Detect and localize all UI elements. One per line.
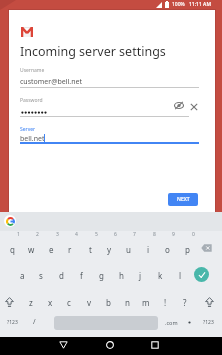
button[interactable] <box>59 341 68 349</box>
button[interactable]: ?123 <box>198 314 218 330</box>
staticText: a <box>20 270 25 281</box>
staticText: f <box>80 270 83 281</box>
staticText: t <box>89 244 92 255</box>
staticText: s <box>39 270 43 281</box>
staticText: d <box>59 270 64 281</box>
button[interactable] <box>201 244 212 252</box>
button[interactable] <box>190 103 198 111</box>
button[interactable]: a <box>13 268 31 282</box>
button[interactable]: i <box>139 242 157 256</box>
staticText: 7 <box>133 231 136 238</box>
staticText: Server <box>20 126 36 133</box>
button[interactable]: / <box>26 314 42 330</box>
button[interactable]: l <box>171 268 189 282</box>
button[interactable]: .com <box>162 314 180 330</box>
staticText: Password <box>20 97 43 104</box>
staticText: z <box>29 297 33 308</box>
staticText: ? <box>183 297 187 308</box>
staticText: p <box>185 244 190 255</box>
button[interactable] <box>20 94 170 118</box>
staticText: c <box>67 297 71 308</box>
staticText: m <box>142 297 150 308</box>
staticText: .com <box>165 319 178 326</box>
button[interactable]: x <box>41 295 59 309</box>
button[interactable] <box>5 297 14 307</box>
staticText: 8 <box>153 231 156 238</box>
staticText: q <box>10 244 15 255</box>
staticText: ?123 <box>7 319 18 326</box>
staticText: h <box>119 270 124 281</box>
staticText: 5 <box>95 231 98 238</box>
staticText: e <box>49 244 54 255</box>
button[interactable] <box>194 267 209 282</box>
button[interactable]: y <box>100 242 118 256</box>
staticText: Username <box>20 67 45 74</box>
staticText: Incoming server settings <box>20 43 166 60</box>
button[interactable]: n <box>118 295 136 309</box>
staticText: 0 <box>192 231 195 238</box>
button[interactable]: v <box>80 295 98 309</box>
button[interactable]: o <box>158 242 176 256</box>
button[interactable]: e <box>42 242 60 256</box>
button[interactable]: k <box>151 268 169 282</box>
staticText: ! <box>164 297 167 308</box>
staticText: j <box>139 270 142 281</box>
staticText: k <box>158 270 163 281</box>
button[interactable]: ? <box>176 295 194 309</box>
button[interactable]: ?123 <box>2 314 22 330</box>
staticText: 100% <box>172 1 185 8</box>
button[interactable] <box>4 215 16 227</box>
staticText: bell.net <box>20 134 45 144</box>
staticText: 1 <box>17 231 20 238</box>
staticText: x <box>48 297 53 308</box>
button[interactable] <box>20 64 199 88</box>
staticText: n <box>125 297 130 308</box>
button[interactable]: u <box>119 242 137 256</box>
staticText: l <box>179 270 182 281</box>
button[interactable]: w <box>22 242 40 256</box>
button[interactable] <box>106 341 114 349</box>
staticText: y <box>107 244 112 255</box>
staticText: b <box>106 297 111 308</box>
staticText: / <box>33 317 36 327</box>
button[interactable] <box>20 123 199 145</box>
staticText: 6 <box>114 231 117 238</box>
staticText: customer@bell.net <box>20 77 83 87</box>
button[interactable]: NEXT <box>168 193 198 206</box>
staticText: NEXT <box>177 196 190 203</box>
button[interactable]: b <box>99 295 117 309</box>
staticText: 9 <box>172 231 175 238</box>
button[interactable]: d <box>52 268 70 282</box>
button[interactable]: h <box>112 268 130 282</box>
button[interactable]: m <box>137 295 155 309</box>
button[interactable]: t <box>81 242 99 256</box>
button[interactable]: c <box>60 295 78 309</box>
button[interactable]: r <box>61 242 79 256</box>
staticText: g <box>99 270 104 281</box>
button[interactable]: z <box>22 295 40 309</box>
button[interactable]: ! <box>156 295 174 309</box>
staticText: i <box>147 244 150 255</box>
staticText: r <box>68 244 72 255</box>
button[interactable] <box>174 101 184 110</box>
staticText: ?123 <box>203 319 214 326</box>
button[interactable]: f <box>72 268 90 282</box>
button[interactable]: g <box>92 268 110 282</box>
button[interactable] <box>151 341 159 349</box>
button[interactable]: s <box>32 268 50 282</box>
button[interactable]: p <box>178 242 196 256</box>
staticText: o <box>165 244 170 255</box>
staticText: 2 <box>36 231 39 238</box>
button[interactable] <box>205 297 214 307</box>
button[interactable] <box>184 314 194 330</box>
button[interactable]: j <box>131 268 149 282</box>
staticText: v <box>87 297 92 308</box>
staticText: u <box>126 244 131 255</box>
staticText: 4 <box>75 231 78 238</box>
button[interactable]: q <box>3 242 21 256</box>
staticText: w <box>28 244 35 255</box>
staticText: 11:11 AM <box>189 1 211 8</box>
staticText: 3 <box>56 231 59 238</box>
